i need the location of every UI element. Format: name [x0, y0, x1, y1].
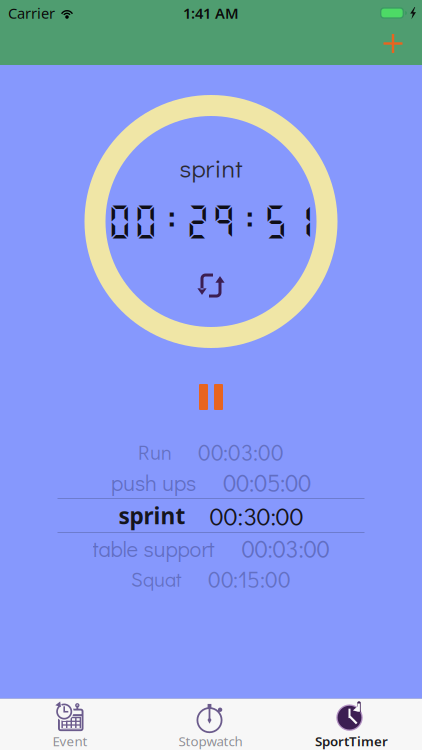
staticText: table support: [92, 534, 214, 563]
staticText: 00:15:00: [208, 564, 291, 594]
staticText: Stopwatch: [178, 732, 242, 750]
staticText: push ups: [111, 468, 196, 497]
button[interactable]: table support: [0, 533, 422, 564]
staticText: SportTimer: [315, 732, 388, 750]
button[interactable]: sprint: [0, 498, 422, 533]
button[interactable]: Squat: [0, 564, 422, 594]
button[interactable]: push ups: [0, 467, 422, 498]
staticText: Squat: [131, 566, 182, 592]
staticText: 00:05:00: [223, 467, 311, 498]
staticText: 00:30:00: [209, 499, 303, 532]
button[interactable]: Stopwatch: [140, 699, 281, 750]
staticText: Event: [52, 732, 87, 750]
staticText: 00:03:00: [198, 437, 284, 467]
staticText: 1:41 AM: [183, 3, 239, 23]
button[interactable]: Event: [0, 699, 140, 750]
staticText: sprint: [179, 151, 242, 184]
staticText: 00:03:00: [241, 533, 329, 564]
button[interactable]: Run: [0, 437, 422, 467]
button[interactable]: Pause: [181, 375, 241, 419]
staticText: 00:29:51: [107, 200, 315, 241]
button[interactable]: Add: [371, 24, 415, 63]
staticText: sprint: [118, 500, 185, 531]
staticText: Carrier: [8, 3, 55, 23]
staticText: Run: [138, 439, 172, 465]
button[interactable]: SportTimer: [281, 699, 422, 750]
button[interactable]: Repeat: [195, 269, 227, 301]
